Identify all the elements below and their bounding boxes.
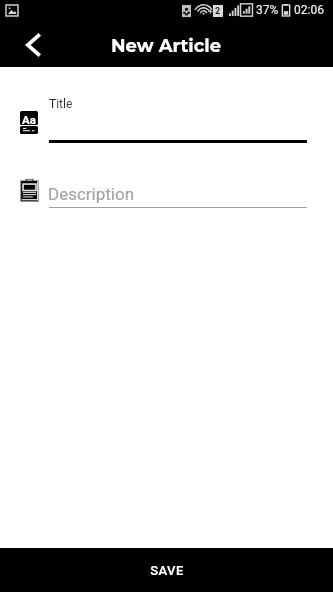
staticText: 2: [215, 6, 221, 17]
staticText: New Article: [111, 35, 222, 57]
staticText: Aa: [22, 113, 36, 125]
staticText: Description: [48, 184, 135, 204]
staticText: 02:06: [294, 3, 324, 17]
button[interactable]: Description: [8, 176, 320, 212]
staticText: Title: [49, 97, 73, 111]
button[interactable]: Aa: [8, 86, 320, 148]
button[interactable]: Back: [12, 24, 52, 64]
staticText: 37%: [256, 3, 279, 17]
button[interactable]: SAVE: [0, 548, 333, 592]
staticText: SAVE: [150, 563, 184, 578]
